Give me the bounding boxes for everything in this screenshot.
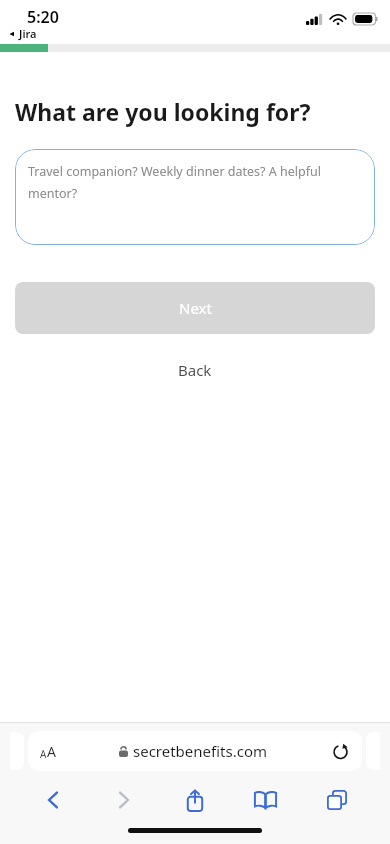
button[interactable]: Bookmarks	[230, 778, 301, 822]
button[interactable]: Back	[0, 354, 390, 386]
staticText: A	[47, 742, 56, 761]
staticText: A	[40, 747, 47, 761]
staticText: 5:20	[27, 6, 59, 28]
button[interactable]: Forward	[88, 778, 159, 822]
staticText: Back	[178, 360, 212, 380]
staticText: Travel companion? Weekly dinner dates? A…	[28, 163, 347, 202]
button[interactable]: Travel companion? Weekly dinner dates? A…	[15, 149, 375, 245]
staticText: Jira	[19, 26, 37, 41]
button[interactable]: Share	[159, 778, 230, 822]
staticText: What are you looking for?	[15, 96, 311, 127]
button[interactable]: Text size	[28, 731, 362, 771]
button[interactable]: Next	[15, 282, 375, 334]
button[interactable]: Tabs	[301, 778, 372, 822]
button[interactable]: Back	[18, 778, 88, 822]
other: Reload	[330, 741, 350, 761]
staticText: Next	[179, 298, 212, 318]
staticText: secretbenefits.com	[133, 741, 267, 761]
other: Text size	[40, 742, 56, 761]
